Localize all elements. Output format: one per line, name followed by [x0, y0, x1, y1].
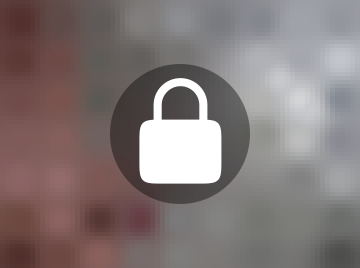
button[interactable]: Locked content [110, 64, 250, 204]
